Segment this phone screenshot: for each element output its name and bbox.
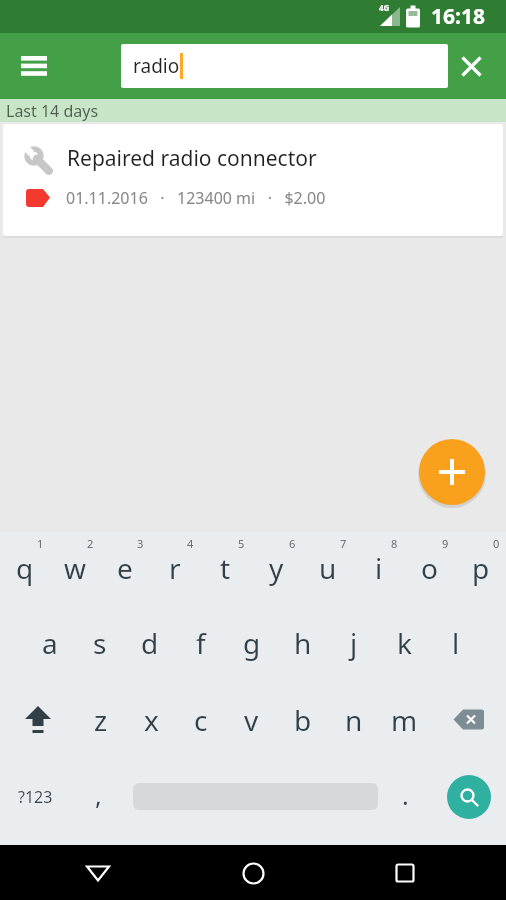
staticText: 9 (442, 536, 449, 551)
staticText: n (345, 701, 363, 739)
staticText: 7 (340, 536, 347, 551)
staticText: g (243, 624, 261, 662)
button[interactable]: i (353, 532, 404, 604)
staticText: 8 (391, 536, 398, 551)
button[interactable]: o (404, 532, 455, 604)
staticText: t (220, 549, 231, 587)
staticText: 3 (137, 536, 144, 551)
staticText: p (472, 549, 490, 587)
staticText: d (141, 624, 159, 662)
staticText: , (95, 778, 102, 812)
staticText: 4 (187, 536, 194, 551)
button[interactable] (74, 849, 122, 897)
staticText: b (294, 701, 312, 739)
staticText: s (93, 624, 107, 662)
button[interactable]: q (0, 532, 50, 604)
button[interactable] (430, 681, 506, 758)
staticText: 01.11.2016 · 123400 mi · $2.00 (66, 187, 326, 209)
button[interactable]: , (70, 758, 126, 835)
staticText: a (42, 624, 58, 662)
button[interactable]: j (328, 604, 379, 681)
button[interactable]: y (251, 532, 302, 604)
button[interactable]: f (175, 604, 226, 681)
staticText: m (391, 701, 418, 739)
staticText: 2 (87, 536, 94, 551)
button[interactable]: m (379, 681, 430, 758)
staticText: . (402, 778, 409, 812)
staticText: 4G (379, 2, 390, 13)
staticText: l (452, 624, 460, 662)
button[interactable]: b (277, 681, 328, 758)
button[interactable]: p (455, 532, 506, 604)
staticText: 0 (493, 536, 500, 551)
button[interactable]: k (379, 604, 430, 681)
button[interactable]: x (126, 681, 176, 758)
button[interactable]: w (50, 532, 100, 604)
button[interactable] (0, 681, 76, 758)
button[interactable]: g (226, 604, 277, 681)
staticText: Last 14 days (6, 100, 99, 122)
staticText: h (294, 624, 312, 662)
staticText: 1 (37, 536, 44, 551)
staticText: q (16, 549, 34, 587)
button[interactable] (419, 439, 485, 505)
staticText: r (169, 549, 181, 587)
staticText: f (196, 624, 206, 662)
button[interactable]: c (176, 681, 226, 758)
button[interactable] (13, 45, 55, 87)
button[interactable] (229, 849, 277, 897)
staticText: 6 (289, 536, 296, 551)
button[interactable]: r (150, 532, 200, 604)
staticText: k (397, 624, 412, 662)
button[interactable]: ?123 (0, 758, 70, 835)
staticText: w (64, 549, 87, 587)
button[interactable]: Repaired radio connector (3, 124, 503, 236)
button[interactable] (452, 47, 490, 85)
staticText: c (194, 701, 208, 739)
button[interactable] (133, 758, 378, 835)
button[interactable]: t (200, 532, 251, 604)
staticText: v (244, 701, 259, 739)
staticText: 16:18 (431, 2, 485, 31)
staticText: 5 (238, 536, 245, 551)
staticText: i (375, 549, 383, 587)
button[interactable]: . (378, 758, 432, 835)
staticText: x (144, 701, 159, 739)
button[interactable]: u (302, 532, 353, 604)
staticText: ?123 (18, 786, 53, 808)
staticText: u (319, 549, 337, 587)
staticText: y (269, 549, 284, 587)
button[interactable]: a (25, 604, 75, 681)
button[interactable]: d (125, 604, 175, 681)
staticText: z (94, 701, 108, 739)
button[interactable]: l (430, 604, 481, 681)
staticText: Repaired radio connector (67, 144, 317, 173)
button[interactable]: radio (121, 44, 448, 88)
staticText: o (421, 549, 438, 587)
staticText: j (350, 624, 358, 662)
button[interactable] (381, 849, 429, 897)
staticText: radio (133, 53, 180, 79)
button[interactable]: h (277, 604, 328, 681)
button[interactable]: n (328, 681, 379, 758)
button[interactable]: s (75, 604, 125, 681)
staticText: e (117, 549, 133, 587)
button[interactable]: e (100, 532, 150, 604)
button[interactable]: z (76, 681, 126, 758)
button[interactable] (432, 758, 506, 835)
button[interactable]: v (226, 681, 277, 758)
